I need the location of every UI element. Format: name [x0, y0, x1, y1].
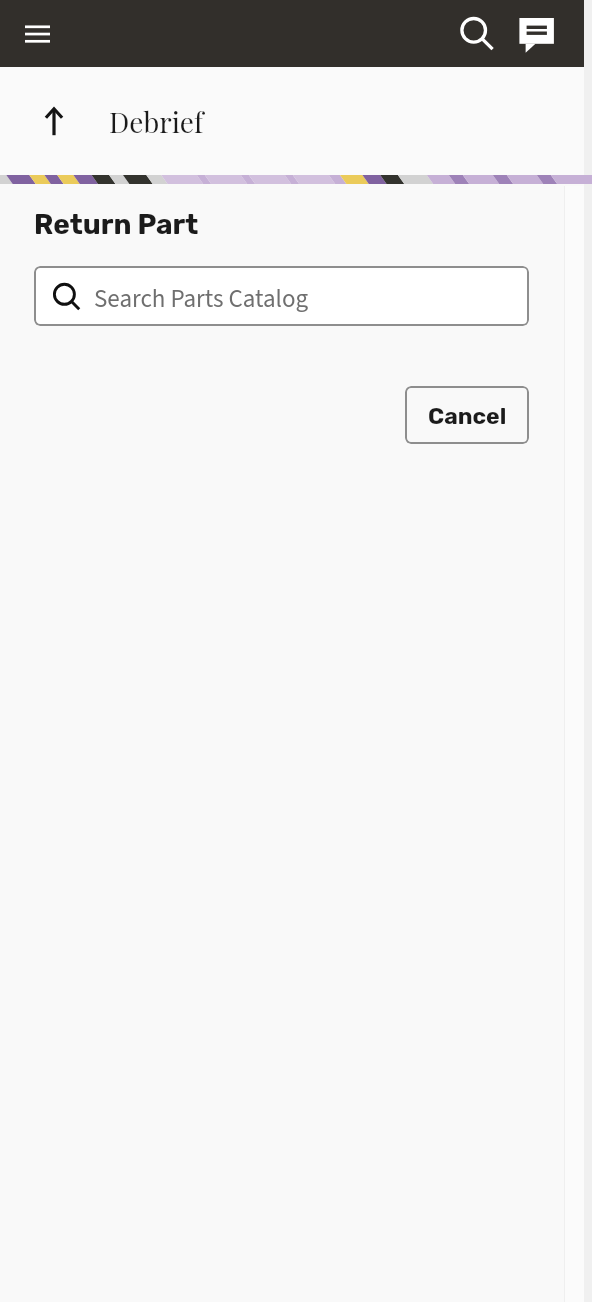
button[interactable]: Search — [447, 4, 503, 62]
button[interactable]: Menu — [9, 9, 65, 59]
staticText: Debrief — [109, 103, 204, 140]
staticText: Search Parts Catalog — [94, 281, 309, 317]
staticText: Return Part — [34, 208, 199, 241]
button[interactable]: Messages — [505, 6, 567, 62]
staticText: Cancel — [428, 402, 507, 429]
button[interactable]: Cancel — [405, 386, 529, 444]
button[interactable]: Search Parts Catalog — [34, 266, 529, 326]
button[interactable]: Back — [28, 95, 80, 147]
